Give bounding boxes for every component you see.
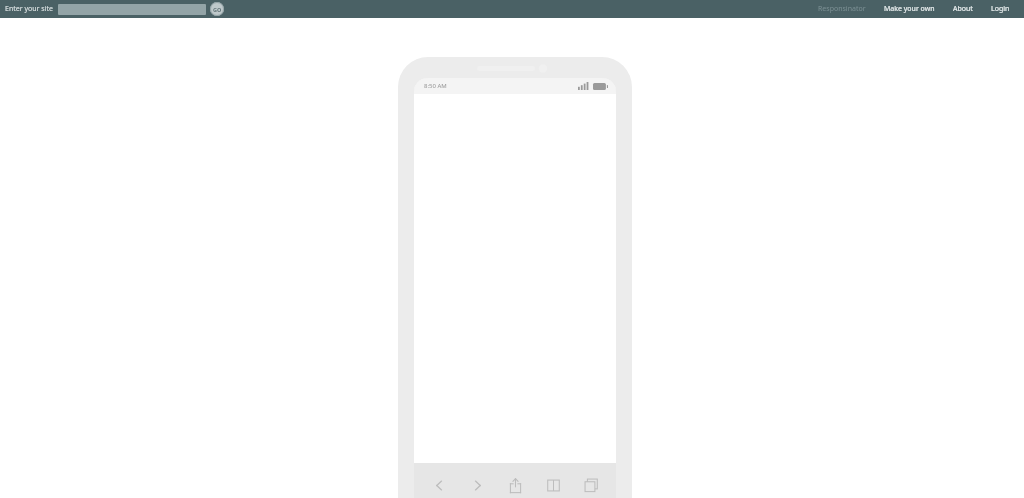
staticText: GO — [213, 6, 222, 13]
button[interactable]: Responsinator — [817, 2, 867, 16]
button[interactable]: Go — [210, 2, 224, 16]
button[interactable]: Make your own — [883, 2, 936, 16]
staticText: Enter your site — [5, 4, 53, 14]
staticText: 8:50 AM — [424, 82, 447, 90]
staticText: About — [953, 4, 973, 14]
button[interactable]: About — [952, 2, 974, 16]
staticText: Login — [991, 4, 1010, 14]
button[interactable]: Login — [990, 2, 1011, 16]
staticText: Responsinator — [818, 4, 866, 14]
button[interactable]: Back — [420, 463, 458, 498]
button[interactable]: Share — [496, 463, 534, 498]
button[interactable]: Tabs — [572, 463, 610, 498]
button[interactable]: Forward — [458, 463, 496, 498]
staticText: Make your own — [884, 4, 935, 14]
button[interactable]: Bookmarks — [534, 463, 572, 498]
